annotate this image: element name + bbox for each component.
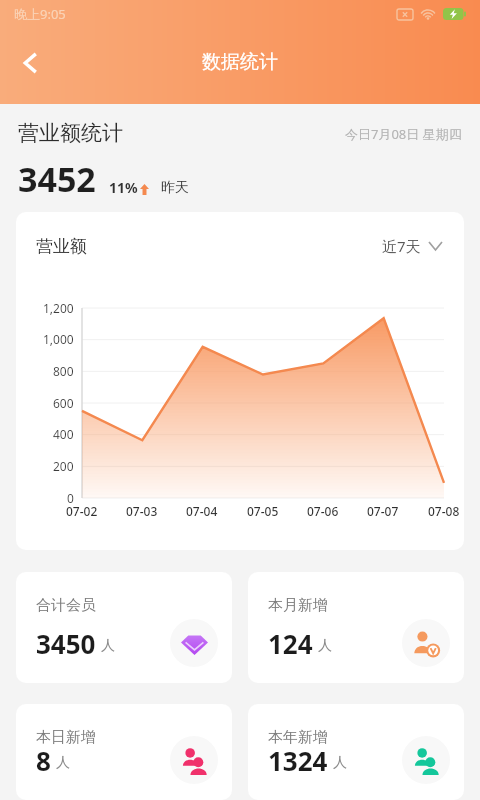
staticText: 本日新增	[36, 728, 96, 747]
button[interactable]: 返回	[8, 40, 54, 86]
button[interactable]: 合计会员	[16, 572, 232, 683]
staticText: 07-03	[126, 503, 158, 519]
staticText: 人	[56, 754, 70, 772]
staticText: 07-04	[186, 503, 218, 519]
staticText: 124	[268, 626, 313, 661]
staticText: 本年新增	[268, 728, 328, 747]
staticText: 07-05	[247, 503, 279, 519]
staticText: 3450	[36, 626, 96, 661]
button[interactable]: 本日新增	[16, 704, 232, 800]
staticText: 0	[67, 490, 74, 506]
staticText: 合计会员	[36, 596, 96, 615]
staticText: 数据统计	[202, 50, 278, 74]
staticText: 1,000	[43, 331, 74, 347]
staticText: 人	[333, 754, 347, 772]
staticText: 晚上9:05	[14, 5, 66, 23]
staticText: 营业额	[36, 236, 87, 257]
staticText: 本月新增	[268, 596, 328, 615]
staticText: 今日7月08日 星期四	[345, 125, 462, 143]
staticText: 昨天	[161, 179, 189, 197]
staticText: 人	[101, 637, 115, 655]
staticText: 800	[53, 363, 74, 379]
button[interactable]: 本月新增	[248, 572, 464, 683]
staticText: 07-08	[428, 503, 460, 519]
staticText: 8	[36, 743, 51, 778]
staticText: 07-02	[66, 503, 98, 519]
staticText: 1324	[268, 743, 328, 778]
staticText: 200	[53, 458, 74, 474]
staticText: 1,200	[43, 300, 74, 316]
staticText: 3452	[18, 156, 96, 202]
staticText: 400	[53, 426, 74, 442]
staticText: 07-07	[367, 503, 399, 519]
button[interactable]: 本年新增	[248, 704, 464, 800]
staticText: 人	[318, 637, 332, 655]
staticText: 营业额统计	[18, 120, 123, 146]
button[interactable]: 近7天	[378, 232, 446, 260]
staticText: 近7天	[382, 236, 421, 256]
staticText: 600	[53, 395, 74, 411]
staticText: 07-06	[307, 503, 339, 519]
staticText: 11%	[109, 178, 138, 197]
